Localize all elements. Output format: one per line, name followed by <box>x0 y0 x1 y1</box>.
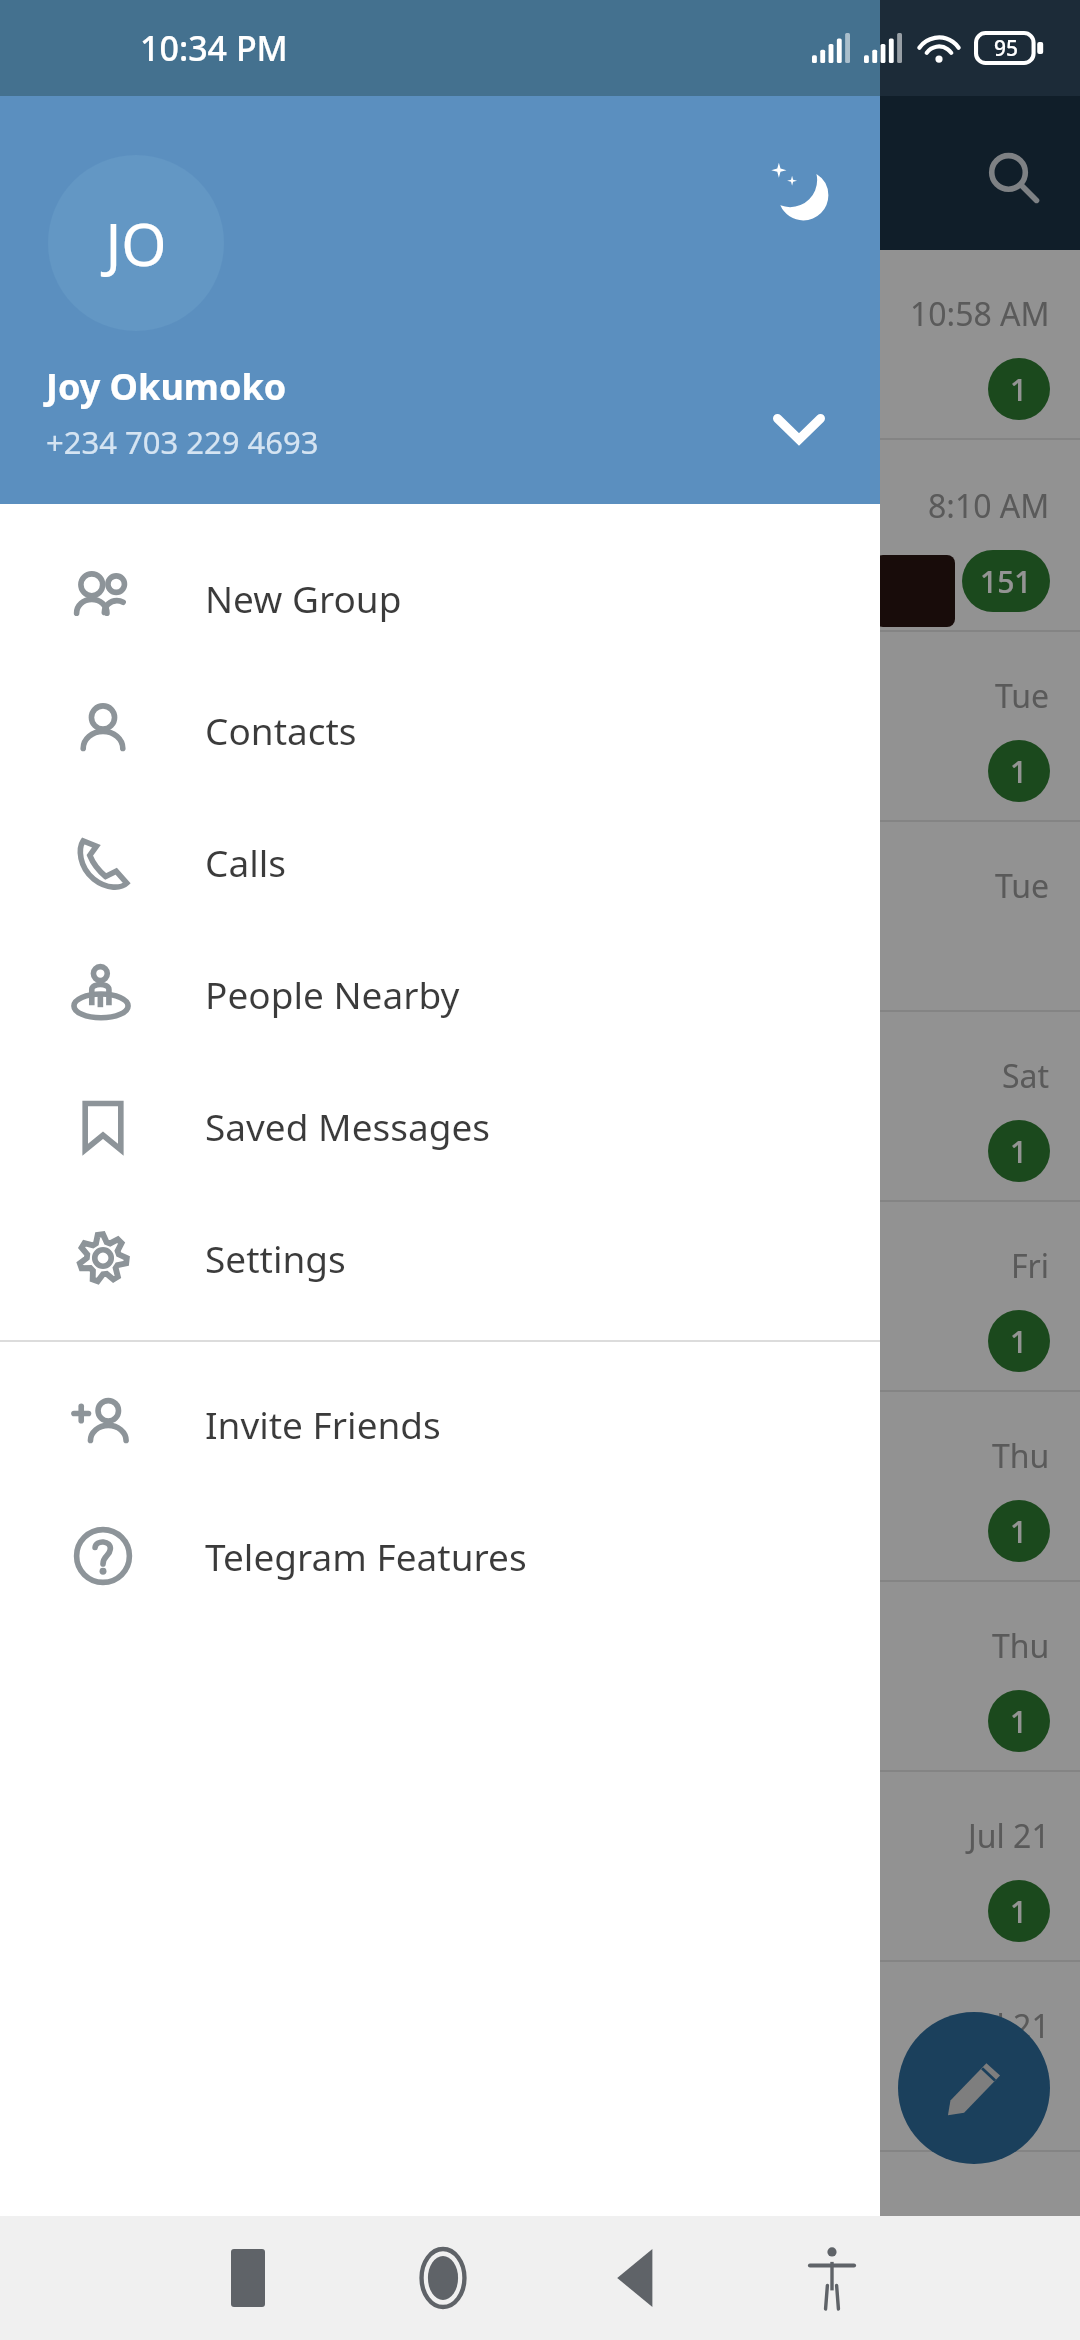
staticText: Jul 21 <box>968 1814 1050 1858</box>
button[interactable]: People Nearby <box>0 928 880 1060</box>
staticText: JO <box>105 204 167 283</box>
staticText: Tue <box>995 674 1050 718</box>
button[interactable]: Telegram Features <box>0 1490 880 1622</box>
staticText: Saved Messages <box>205 1101 491 1151</box>
button[interactable]: Calls <box>0 796 880 928</box>
staticText: +234 703 229 4693 <box>46 421 319 463</box>
button[interactable]: New Group <box>0 532 880 664</box>
staticText: Settings <box>205 1233 346 1283</box>
staticText: People Nearby <box>205 969 460 1019</box>
staticText: Tue <box>995 864 1050 908</box>
button[interactable]: Settings <box>0 1192 880 1324</box>
staticText: 1 <box>1010 369 1028 410</box>
button[interactable]: Accessibility <box>784 2230 880 2326</box>
button[interactable]: Contacts <box>0 664 880 796</box>
staticText: 1 <box>1010 1131 1028 1172</box>
button[interactable]: Expand accounts <box>752 382 846 476</box>
other: Search <box>985 150 1041 206</box>
button[interactable]: Invite Friends <box>0 1358 880 1490</box>
staticText: Joy Okumoko <box>46 362 287 411</box>
staticText: 8:10 AM <box>928 484 1050 528</box>
staticText: Jul 21 <box>968 2004 1050 2048</box>
staticText: Thu <box>992 1434 1050 1478</box>
staticText: 10:58 AM <box>910 292 1050 336</box>
staticText: Thu <box>992 1624 1050 1668</box>
staticText: 95 <box>994 34 1019 63</box>
staticText: Sat <box>1002 1054 1050 1098</box>
button[interactable]: New message <box>898 2012 1050 2164</box>
staticText: Fri <box>1011 1244 1050 1288</box>
staticText: 1 <box>1010 1891 1028 1932</box>
staticText: 151 <box>980 561 1032 602</box>
button[interactable]: Saved Messages <box>0 1060 880 1192</box>
staticText: 1 <box>1010 1321 1028 1362</box>
staticText: Telegram Features <box>205 1531 527 1581</box>
button[interactable]: Back <box>589 2230 685 2326</box>
staticText: New Group <box>205 573 402 623</box>
button[interactable]: Home <box>395 2230 491 2326</box>
staticText: 1 <box>1010 1511 1028 1552</box>
button[interactable]: Recent apps <box>200 2230 296 2326</box>
staticText: Invite Friends <box>205 1399 441 1449</box>
button[interactable]: JO <box>0 96 880 504</box>
staticText: Calls <box>205 837 286 887</box>
staticText: 10:34 PM <box>140 25 288 71</box>
staticText: 1 <box>1010 751 1028 792</box>
button[interactable]: Toggle night mode <box>752 144 848 240</box>
staticText: 1 <box>1010 1701 1028 1742</box>
staticText: Contacts <box>205 705 357 755</box>
